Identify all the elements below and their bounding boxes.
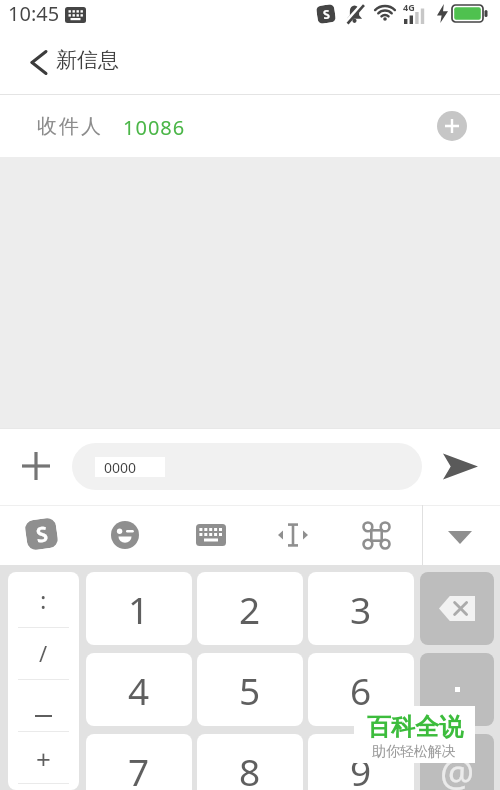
button[interactable]: +: [8, 732, 79, 784]
button[interactable]: S: [24, 517, 59, 551]
staticText: 5: [239, 665, 261, 715]
button[interactable]: 7: [86, 734, 192, 790]
button[interactable]: [196, 524, 226, 546]
staticText: 0000: [104, 458, 137, 477]
staticText: /: [39, 638, 48, 668]
button[interactable]: [420, 653, 494, 726]
staticText: 收件人: [36, 114, 102, 139]
button[interactable]: [437, 111, 467, 141]
staticText: 7: [128, 746, 150, 790]
button[interactable]: :: [8, 572, 79, 627]
staticText: 2: [239, 584, 261, 634]
staticText: 10086: [123, 114, 186, 141]
button[interactable]: /: [8, 627, 79, 679]
staticText: @: [440, 745, 475, 790]
staticText: 4: [128, 665, 150, 715]
button[interactable]: 2: [197, 572, 303, 645]
button[interactable]: 1: [86, 572, 192, 645]
button[interactable]: 9: [308, 734, 414, 790]
button[interactable]: @: [420, 734, 494, 790]
button[interactable]: 0000: [72, 443, 422, 490]
button[interactable]: [420, 572, 494, 645]
button[interactable]: [0, 95, 500, 157]
staticText: 助你轻松解决: [372, 743, 456, 761]
button[interactable]: [111, 521, 139, 549]
staticText: S: [34, 519, 50, 550]
staticText: 3: [350, 584, 372, 634]
button[interactable]: [8, 679, 79, 732]
button[interactable]: 4: [86, 653, 192, 726]
staticText: 9: [350, 746, 372, 790]
staticText: 6: [350, 665, 372, 715]
staticText: 1: [128, 584, 150, 634]
button[interactable]: [22, 42, 142, 82]
button[interactable]: [363, 522, 390, 549]
staticText: 新信息: [56, 47, 119, 73]
staticText: 百科全说: [367, 712, 463, 742]
staticText: 4G: [403, 1, 415, 13]
button[interactable]: 5: [197, 653, 303, 726]
button[interactable]: [443, 451, 478, 482]
button[interactable]: 8: [197, 734, 303, 790]
staticText: 10:45: [8, 0, 60, 27]
button[interactable]: 6: [308, 653, 414, 726]
staticText: 8: [239, 746, 261, 790]
button[interactable]: [22, 452, 50, 480]
staticText: +: [36, 741, 51, 776]
staticText: S: [322, 5, 331, 22]
button[interactable]: 3: [308, 572, 414, 645]
button[interactable]: [277, 523, 309, 547]
button[interactable]: [448, 531, 472, 544]
staticText: :: [40, 583, 47, 616]
